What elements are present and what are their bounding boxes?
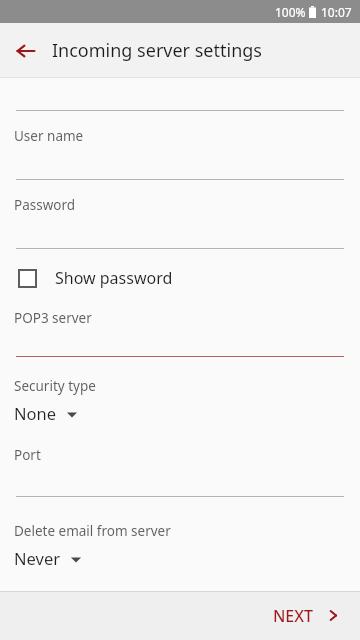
staticText: 100% [275, 4, 306, 20]
staticText: Show password [55, 267, 173, 289]
button[interactable]: Port [0, 446, 360, 464]
button[interactable]: Password [0, 196, 360, 214]
button[interactable]: Show password [0, 260, 360, 296]
staticText: None [14, 402, 57, 424]
button[interactable]: User name [0, 127, 360, 145]
staticText: Delete email from server [14, 522, 171, 540]
staticText: Never [14, 547, 61, 569]
button[interactable]: POP3 server [0, 309, 360, 327]
button[interactable]: Back [0, 23, 52, 78]
button[interactable]: Security type [0, 377, 360, 424]
button[interactable]: Delete email from server [0, 522, 360, 569]
button[interactable]: NEXT [248, 591, 360, 640]
staticText: 10:07 [321, 4, 352, 20]
staticText: Security type [14, 377, 96, 395]
staticText: NEXT [272, 605, 313, 627]
staticText: Incoming server settings [52, 38, 262, 63]
